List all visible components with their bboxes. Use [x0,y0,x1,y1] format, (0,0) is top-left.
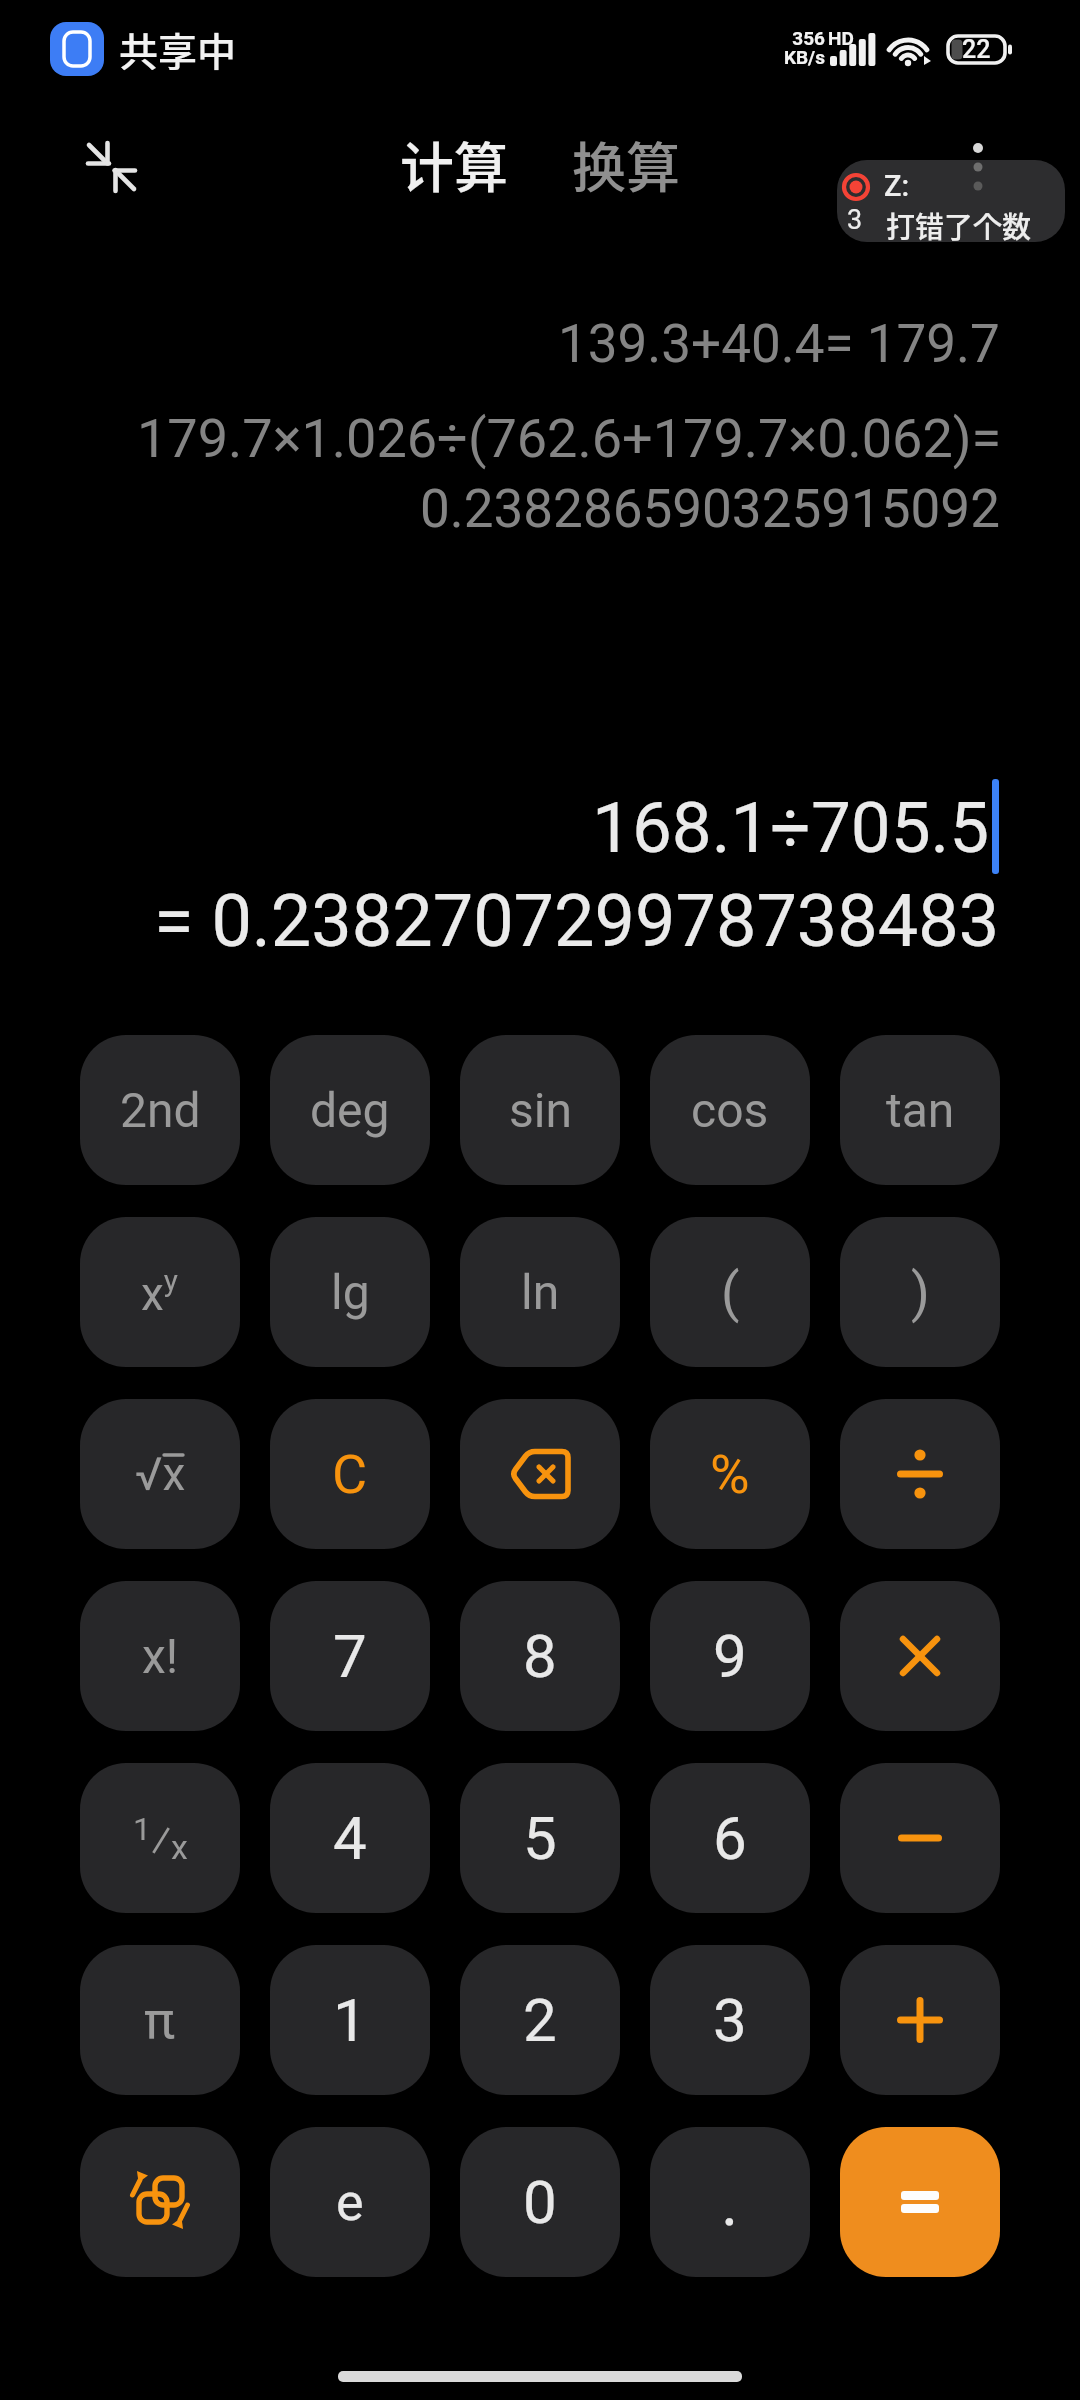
staticText: = 0.238270729978738483 [154,879,1000,963]
staticText: tan [886,1082,955,1138]
staticText: 2 [523,1985,557,2055]
staticText: 5 [523,1803,557,1873]
staticText: 计算 [400,125,508,203]
staticText: 9 [713,1621,747,1691]
staticText: π [144,1990,176,2051]
staticText: Z: [884,169,910,203]
staticText: 179.7×1.026÷(762.6+179.7×0.062)= [137,407,1002,470]
staticText: 22 [962,35,991,64]
staticText: 1⁄x [133,1810,188,1867]
staticText: % [710,1443,750,1506]
staticText: HD [828,27,854,49]
staticText: lg [331,1264,370,1320]
staticText: 换算 [572,125,680,203]
staticText: 3 [713,1985,747,2055]
staticText: 4 [333,1803,367,1873]
staticText: √x [135,1447,186,1501]
staticText: xy [141,1263,179,1322]
staticText: cos [691,1082,769,1138]
staticText: ) [911,1261,930,1324]
staticText: sin [509,1082,572,1138]
staticText: C [332,1443,368,1506]
staticText: 168.1÷705.5 [592,786,990,869]
staticText: 2nd [120,1082,201,1138]
staticText: 3 [847,204,863,236]
staticText: e [336,2172,364,2233]
staticText: 7 [333,1621,367,1691]
staticText: x! [142,1628,179,1684]
staticText: 6 [713,1803,747,1873]
staticText: 356 KB/s [783,27,825,69]
staticText: 打错了个数 [886,204,1032,242]
staticText: 共享中 [119,21,237,77]
staticText: 0 [523,2167,557,2237]
staticText: ( [721,1261,740,1324]
staticText: 0.238286590325915092 [420,478,1000,540]
staticText: ln [521,1264,560,1320]
staticText: deg [310,1082,390,1138]
staticText: . [721,2164,739,2241]
staticText: 139.3+40.4= 179.7 [558,313,1000,375]
staticText: 1 [333,1985,367,2055]
staticText: 8 [523,1621,557,1691]
